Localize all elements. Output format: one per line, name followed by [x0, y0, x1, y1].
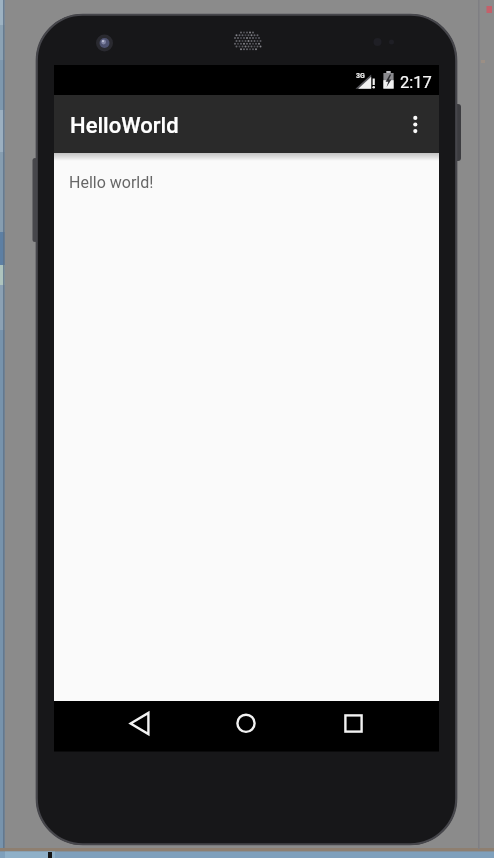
- button[interactable]: [218, 701, 274, 751]
- button[interactable]: [399, 99, 432, 141]
- staticText: HelloWorld: [70, 113, 179, 139]
- button[interactable]: [325, 701, 381, 751]
- staticText: Hello world!: [69, 173, 154, 192]
- button[interactable]: [111, 701, 167, 751]
- staticText: 2:17: [400, 73, 432, 92]
- staticText: 3G: [356, 72, 365, 80]
